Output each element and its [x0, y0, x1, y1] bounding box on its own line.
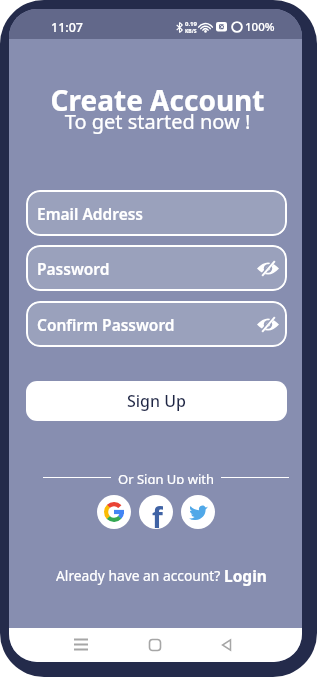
button[interactable]	[97, 495, 131, 529]
staticText: Login	[224, 565, 267, 586]
button[interactable]	[257, 316, 279, 333]
button[interactable]: Email Address	[26, 190, 287, 236]
staticText: Password	[37, 258, 110, 279]
staticText: Email Address	[37, 203, 143, 224]
button[interactable]	[145, 636, 165, 654]
staticText: f	[152, 498, 163, 529]
staticText: 0.19	[185, 20, 197, 28]
staticText: Create Account	[11, 81, 302, 119]
staticText: Or Sign Up with	[118, 470, 214, 484]
button[interactable]: Password	[26, 245, 287, 291]
staticText: Sign Up	[127, 390, 186, 412]
staticText: 100%	[245, 19, 275, 35]
button[interactable]: Login	[224, 565, 267, 586]
button[interactable]: Confirm Password	[26, 301, 287, 347]
button[interactable]	[181, 495, 215, 529]
button[interactable]: f	[139, 495, 173, 529]
button[interactable]	[71, 636, 91, 654]
staticText: Already have an account?	[56, 566, 224, 585]
button[interactable]: Sign Up	[26, 381, 287, 421]
staticText: KB/S	[185, 28, 197, 35]
button[interactable]	[217, 636, 237, 654]
button[interactable]	[257, 260, 279, 277]
staticText: To get started now !	[11, 108, 302, 135]
staticText: 11:07	[51, 19, 84, 36]
staticText: Confirm Password	[37, 314, 175, 335]
